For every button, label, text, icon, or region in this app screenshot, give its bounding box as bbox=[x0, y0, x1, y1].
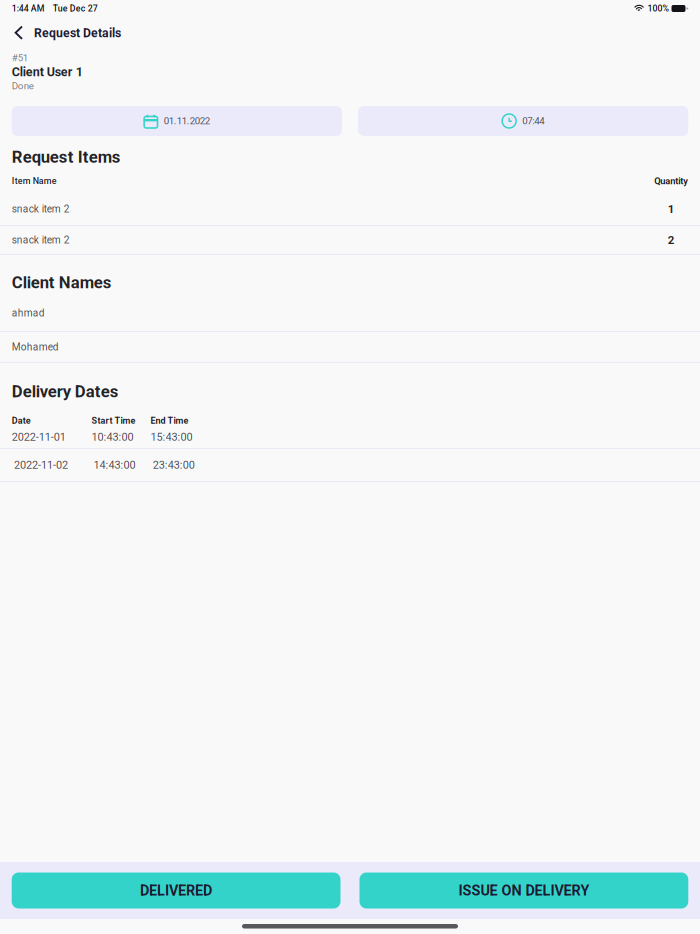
button[interactable]: 01.11.2022 bbox=[12, 106, 342, 136]
staticText: snack item 2 bbox=[12, 234, 70, 246]
staticText: 10:43:00 bbox=[91, 431, 133, 443]
staticText: Start Time bbox=[91, 415, 135, 426]
staticText: Tue Dec 27 bbox=[53, 3, 98, 14]
button[interactable]: ISSUE ON DELIVERY bbox=[359, 872, 688, 908]
staticText: 14:43:00 bbox=[94, 459, 136, 471]
staticText: Item Name bbox=[12, 176, 57, 186]
staticText: ahmad bbox=[12, 307, 45, 319]
staticText: 2022-11-02 bbox=[14, 459, 68, 471]
staticText: 1 bbox=[668, 202, 675, 216]
staticText: 2 bbox=[668, 233, 675, 247]
staticText: Done bbox=[12, 80, 34, 92]
staticText: 1:44 AM bbox=[12, 3, 45, 14]
staticText: Client Names bbox=[12, 273, 112, 292]
staticText: Client User 1 bbox=[12, 65, 83, 79]
button[interactable]: Back bbox=[8, 20, 30, 46]
staticText: Delivery Dates bbox=[12, 382, 119, 401]
staticText: 15:43:00 bbox=[151, 431, 193, 443]
staticText: Quantity bbox=[654, 175, 688, 186]
staticText: Date bbox=[12, 415, 31, 426]
staticText: #51 bbox=[12, 52, 28, 64]
staticText: Request Details bbox=[34, 26, 121, 40]
staticText: 23:43:00 bbox=[153, 459, 195, 471]
staticText: Mohamed bbox=[12, 341, 59, 353]
staticText: 2022-11-01 bbox=[12, 431, 66, 443]
staticText: ISSUE ON DELIVERY bbox=[458, 882, 589, 899]
button[interactable]: 07:44 bbox=[358, 106, 688, 136]
staticText: End Time bbox=[151, 415, 189, 426]
staticText: 07:44 bbox=[522, 115, 544, 127]
staticText: Request Items bbox=[12, 147, 121, 167]
button[interactable]: DELIVERED bbox=[12, 872, 340, 908]
staticText: 100% bbox=[647, 3, 668, 14]
staticText: 01.11.2022 bbox=[164, 115, 210, 127]
staticText: snack item 2 bbox=[12, 203, 70, 215]
staticText: DELIVERED bbox=[140, 882, 212, 899]
